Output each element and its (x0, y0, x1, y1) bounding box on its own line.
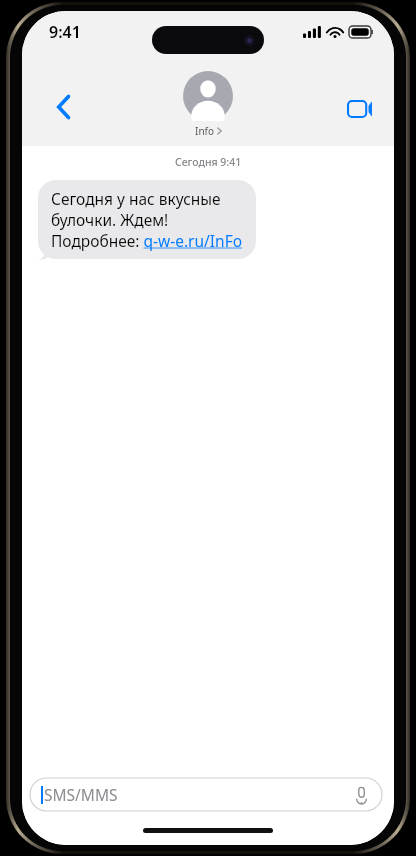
button[interactable]: SMS/MMS (30, 778, 382, 811)
staticText: SMS/MMS (44, 784, 118, 805)
staticText: Сегодня у нас вкусные (51, 188, 221, 209)
staticText: 9:41 (49, 21, 81, 43)
button[interactable]: Back (44, 87, 84, 127)
staticText: Подробнее: q-w-e.ru/InFo (51, 230, 243, 251)
staticText: булочки. Ждем! (51, 209, 169, 230)
staticText: Сегодня 9:41 (175, 155, 242, 169)
button[interactable]: Сегодня у нас вкусные (38, 180, 256, 259)
button[interactable]: Info (183, 71, 233, 138)
button[interactable]: Video call (340, 89, 380, 129)
button[interactable]: Dictate (346, 780, 376, 810)
staticText: Info (195, 124, 215, 138)
